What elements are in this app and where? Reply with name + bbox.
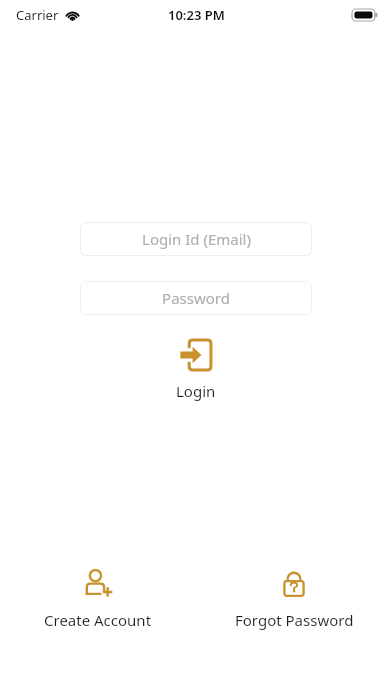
button[interactable]: Create Account — [0, 565, 196, 632]
staticText: Login — [176, 381, 216, 401]
button[interactable]: Forgot Password — [196, 565, 392, 632]
staticText: Carrier — [16, 6, 59, 24]
button[interactable]: Login — [136, 336, 256, 403]
staticText: 10:23 PM — [168, 6, 225, 24]
button[interactable]: Password — [80, 281, 312, 315]
staticText: Create Account — [44, 610, 152, 630]
staticText: Forgot Password — [235, 610, 354, 630]
button[interactable]: Login Id (Email) — [80, 222, 312, 256]
staticText: Password — [162, 288, 230, 308]
staticText: Login Id (Email) — [142, 229, 251, 249]
